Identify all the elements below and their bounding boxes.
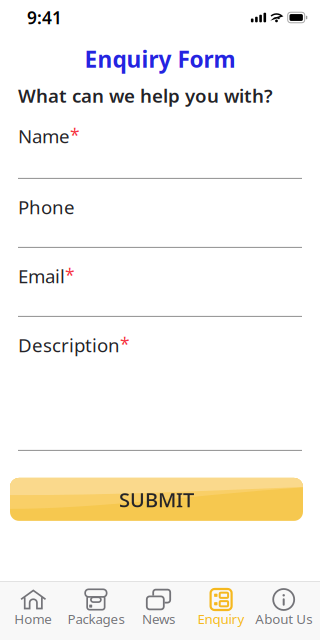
button[interactable]: SUBMIT: [10, 478, 303, 521]
button[interactable]: Enquiry: [190, 582, 252, 640]
staticText: About Us: [255, 610, 312, 628]
button[interactable]: Home: [2, 582, 65, 640]
staticText: *: [70, 123, 80, 146]
staticText: *: [120, 332, 130, 355]
staticText: Name: [18, 123, 70, 148]
staticText: Home: [14, 610, 52, 628]
staticText: *: [65, 263, 75, 286]
staticText: Enquiry: [198, 610, 245, 628]
button[interactable]: Packages: [65, 582, 127, 640]
staticText: 9:41: [27, 6, 62, 29]
staticText: Description: [18, 332, 120, 357]
staticText: News: [142, 610, 175, 628]
button[interactable]: About Us: [252, 582, 315, 640]
staticText: Email: [18, 263, 65, 288]
staticText: Enquiry Form: [84, 44, 235, 74]
staticText: SUBMIT: [119, 486, 194, 513]
staticText: Packages: [67, 610, 124, 628]
staticText: What can we help you with?: [18, 83, 273, 108]
staticText: Phone: [18, 194, 75, 219]
button[interactable]: News: [127, 582, 190, 640]
